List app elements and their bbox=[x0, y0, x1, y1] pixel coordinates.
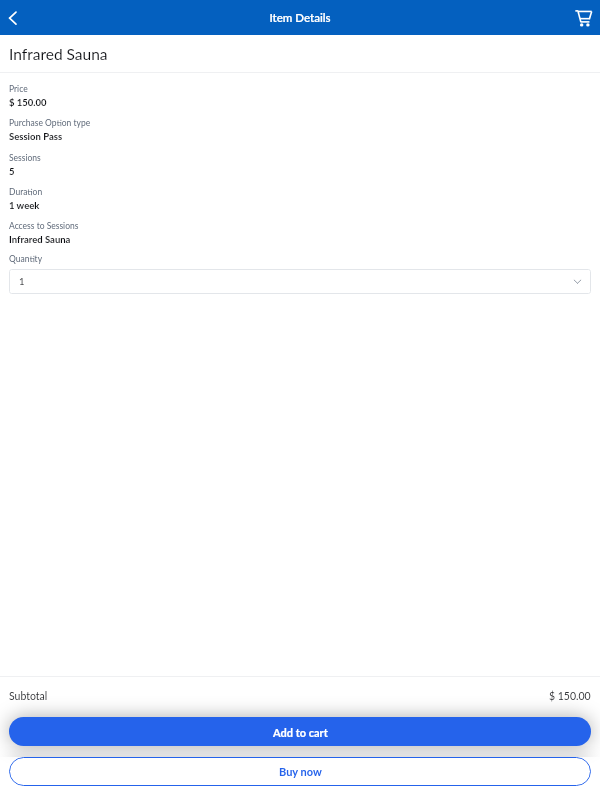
staticText: Quantity bbox=[9, 254, 43, 264]
staticText: 5 bbox=[9, 166, 15, 177]
staticText: Duration bbox=[9, 187, 43, 197]
staticText: Purchase Option type bbox=[9, 118, 91, 128]
staticText: Price bbox=[9, 84, 28, 94]
button[interactable]: Buy now bbox=[9, 757, 591, 786]
staticText: $ 150.00 bbox=[9, 97, 47, 108]
button[interactable]: 1 bbox=[9, 269, 591, 294]
staticText: Buy now bbox=[279, 765, 322, 778]
button[interactable]: Add to cart bbox=[9, 717, 591, 746]
staticText: Access to Sessions bbox=[9, 221, 79, 231]
staticText: Add to cart bbox=[273, 726, 328, 739]
button[interactable]: Shopping cart bbox=[570, 5, 596, 31]
staticText: 1 bbox=[19, 276, 25, 287]
staticText: Infrared Sauna bbox=[9, 234, 71, 245]
staticText: Sessions bbox=[9, 153, 41, 163]
staticText: Subtotal bbox=[9, 690, 48, 703]
staticText: 1 week bbox=[9, 200, 40, 211]
staticText: Infrared Sauna bbox=[9, 45, 108, 64]
staticText: $ 150.00 bbox=[549, 690, 591, 703]
staticText: Item Details bbox=[269, 11, 331, 25]
button[interactable]: Back bbox=[0, 3, 30, 33]
staticText: Session Pass bbox=[9, 131, 63, 142]
